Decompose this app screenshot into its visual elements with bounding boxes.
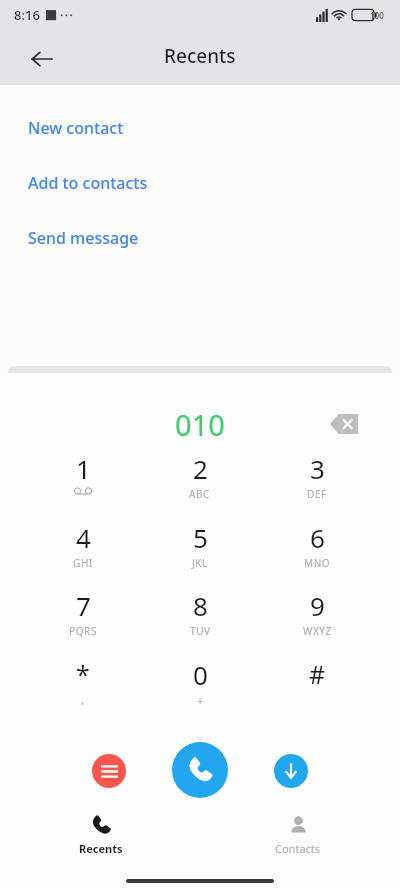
- button[interactable]: Recents: [51, 812, 151, 868]
- staticText: *: [76, 657, 90, 691]
- staticText: 5: [193, 520, 208, 555]
- staticText: PQRS: [69, 624, 97, 638]
- staticText: GHI: [73, 556, 93, 570]
- staticText: 0: [193, 657, 208, 692]
- staticText: 010: [0, 405, 400, 444]
- button[interactable]: Send message: [0, 222, 400, 254]
- button[interactable]: Add to contacts: [0, 167, 400, 199]
- button[interactable]: Contacts: [248, 812, 348, 868]
- staticText: 100: [370, 10, 384, 21]
- staticText: 9: [310, 588, 325, 623]
- staticText: 6: [310, 520, 325, 555]
- button[interactable]: Call: [172, 742, 228, 798]
- staticText: 4: [76, 520, 91, 555]
- button[interactable]: 6: [269, 520, 365, 580]
- staticText: ,: [81, 692, 85, 707]
- staticText: 1: [76, 451, 91, 486]
- staticText: New contact: [28, 117, 124, 139]
- button[interactable]: Backspace: [322, 402, 366, 446]
- staticText: JKL: [192, 556, 208, 570]
- button[interactable]: #: [269, 657, 365, 717]
- staticText: 8:16: [14, 6, 40, 24]
- staticText: ABC: [189, 487, 211, 501]
- staticText: 3: [310, 451, 325, 486]
- button[interactable]: Keypad options: [92, 754, 126, 788]
- staticText: Recents: [164, 43, 236, 69]
- button[interactable]: 7: [35, 588, 131, 648]
- button[interactable]: *: [35, 657, 131, 717]
- staticText: 2: [193, 451, 208, 486]
- button[interactable]: 4: [35, 520, 131, 580]
- button[interactable]: Back: [22, 39, 62, 79]
- button[interactable]: 0: [152, 657, 248, 717]
- button[interactable]: 2: [152, 451, 248, 511]
- staticText: +: [197, 693, 204, 708]
- button[interactable]: 8: [152, 588, 248, 648]
- staticText: Add to contacts: [28, 172, 148, 194]
- staticText: Send message: [28, 227, 139, 249]
- staticText: Recents: [79, 841, 123, 856]
- button[interactable]: 5: [152, 520, 248, 580]
- button[interactable]: 1: [35, 451, 131, 511]
- staticText: 8: [193, 588, 208, 623]
- staticText: Contacts: [275, 841, 321, 856]
- button[interactable]: 3: [269, 451, 365, 511]
- button[interactable]: New contact: [0, 112, 400, 144]
- button[interactable]: Hide keypad: [274, 754, 308, 788]
- button[interactable]: 9: [269, 588, 365, 648]
- staticText: #: [309, 657, 326, 691]
- staticText: WXYZ: [303, 624, 332, 638]
- staticText: TUV: [190, 624, 211, 638]
- staticText: DEF: [307, 487, 327, 501]
- staticText: 7: [76, 588, 91, 623]
- staticText: MNO: [304, 556, 331, 570]
